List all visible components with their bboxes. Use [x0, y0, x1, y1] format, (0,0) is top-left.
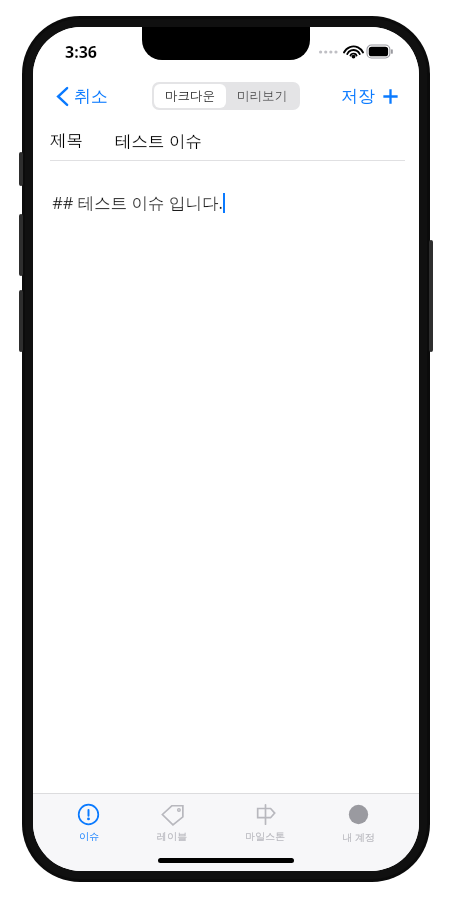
staticText: 테스트 이슈	[115, 129, 202, 152]
staticText: 저장	[341, 86, 375, 107]
button[interactable]: 마크다운	[154, 84, 226, 108]
button[interactable]: 이슈	[63, 799, 114, 847]
button[interactable]: 제목	[33, 120, 419, 160]
other: 레이블	[161, 803, 184, 826]
staticText: 마크다운	[165, 88, 215, 104]
staticText: 마일스톤	[245, 830, 285, 843]
button[interactable]: 내 계정	[328, 799, 389, 848]
button[interactable]: 마일스톤	[231, 799, 299, 847]
staticText: ## 테스트 이슈 입니다.	[52, 191, 223, 214]
other: 이슈	[77, 803, 100, 826]
button[interactable]: 취소	[51, 80, 114, 113]
button[interactable]: 저장	[337, 80, 403, 113]
staticText: 제목	[50, 130, 83, 151]
staticText: 내 계정	[342, 830, 375, 844]
other: 마일스톤	[254, 803, 277, 826]
staticText: 3:36	[65, 41, 97, 63]
staticText: 미리보기	[237, 88, 287, 104]
staticText: 이슈	[79, 830, 99, 843]
staticText: 레이블	[157, 830, 187, 843]
other: 내 계정	[347, 803, 370, 826]
button[interactable]: 레이블	[143, 799, 201, 847]
button[interactable]: 미리보기	[226, 84, 298, 108]
staticText: 취소	[74, 86, 108, 107]
